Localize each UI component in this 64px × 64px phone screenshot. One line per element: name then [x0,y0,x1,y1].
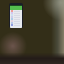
button[interactable] [10,12,22,14]
button[interactable] [10,20,22,22]
button[interactable] [10,22,22,24]
button[interactable] [10,14,22,16]
button[interactable] [10,16,22,18]
button[interactable] [10,24,22,26]
button[interactable] [10,10,22,12]
button[interactable] [10,18,22,20]
